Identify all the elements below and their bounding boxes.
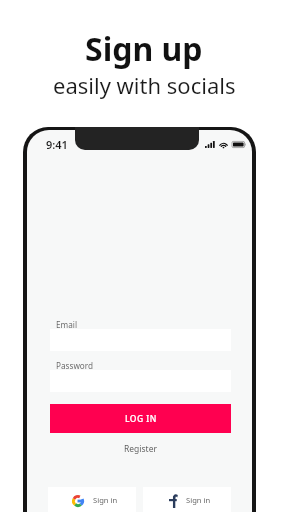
staticText: Sign in xyxy=(93,495,118,505)
staticText: Password xyxy=(56,360,94,371)
button[interactable]: Sign in xyxy=(48,487,136,512)
button[interactable]: Sign in xyxy=(143,487,231,512)
staticText: 9:41 xyxy=(46,137,68,152)
staticText: easily with socials xyxy=(53,70,236,100)
button[interactable]: LOG IN xyxy=(50,404,231,433)
staticText: Sign up xyxy=(85,27,203,71)
staticText: LOG IN xyxy=(125,413,157,425)
staticText: Sign in xyxy=(186,495,211,505)
button[interactable]: Register xyxy=(50,443,231,455)
staticText: Email xyxy=(56,319,78,330)
